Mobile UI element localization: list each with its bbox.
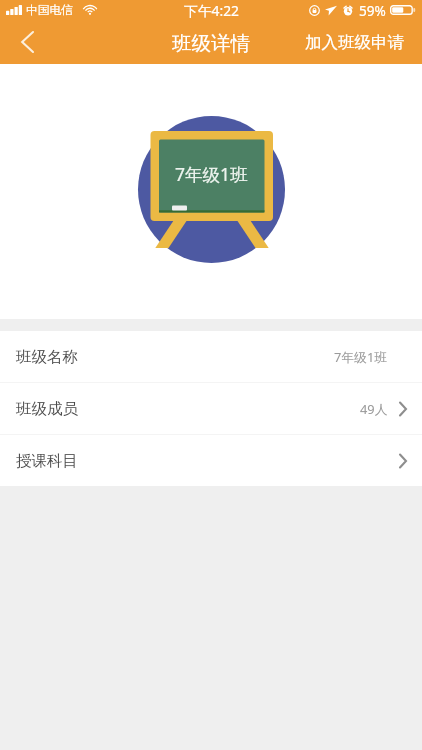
staticText: 49人 [360,400,388,417]
staticText: 班级成员 [16,399,78,419]
staticText: 下午4:22 [184,1,239,20]
staticText: 加入班级申请 [305,32,404,53]
staticText: 班级名称 [16,347,78,367]
staticText: 中国电信 [26,3,73,18]
button[interactable]: 班级成员 [0,383,422,434]
staticText: 7年级1班 [175,162,248,186]
button[interactable]: 授课科目 [0,435,422,486]
button[interactable]: Back [0,20,55,64]
staticText: 班级详情 [172,31,250,56]
button[interactable]: 班级名称 [0,331,422,382]
staticText: 授课科目 [16,451,78,471]
button[interactable]: 加入班级申请 [297,20,422,64]
staticText: 7年级1班 [334,348,388,365]
staticText: 59% [359,1,386,20]
